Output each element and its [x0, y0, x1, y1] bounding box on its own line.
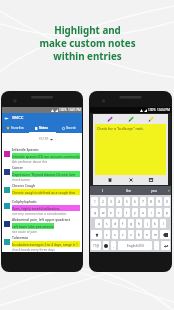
button[interactable]: r [116, 208, 122, 217]
staticText: 9 [158, 200, 160, 204]
button[interactable]: 0 [164, 197, 170, 206]
button[interactable]: Green highlighter [128, 116, 134, 122]
staticText: m [154, 233, 157, 237]
button[interactable]: b [136, 230, 142, 239]
button[interactable]: f [120, 219, 126, 228]
button[interactable]: 2 [100, 197, 106, 206]
button[interactable]: w [100, 208, 106, 217]
button[interactable]: z [104, 230, 110, 239]
staticText: h [138, 222, 140, 226]
button[interactable]: g [128, 219, 134, 228]
staticText: the [126, 188, 132, 193]
button[interactable]: Favorites [2, 123, 28, 133]
button[interactable]: n [144, 230, 150, 239]
button[interactable]: 5 [124, 197, 130, 206]
staticText: d [114, 222, 116, 226]
button[interactable]: 4 [116, 197, 122, 206]
button[interactable]: a [95, 219, 102, 228]
staticText: 5 [126, 200, 128, 204]
button[interactable]: Cancer [2, 164, 82, 182]
staticText: g [130, 222, 132, 226]
button[interactable]: o [156, 208, 162, 217]
button[interactable]: Emoji [103, 241, 109, 250]
button[interactable]: i [148, 208, 154, 217]
button[interactable]: k [152, 219, 158, 228]
button[interactable]: Notes [28, 123, 55, 133]
button[interactable]: l [160, 219, 166, 228]
staticText: l [163, 222, 164, 226]
staticText: > [168, 189, 170, 193]
button[interactable]: you [141, 186, 166, 195]
button[interactable]: 7 [140, 197, 146, 206]
staticText: you [151, 188, 157, 193]
staticText: English(US) [127, 244, 144, 248]
button[interactable]: Chronic Cough [2, 182, 82, 198]
staticText: s [106, 222, 108, 226]
button[interactable]: 9 [156, 197, 162, 206]
button[interactable]: Yellow highlighter [148, 116, 154, 122]
staticText: i [151, 211, 152, 215]
button[interactable]: v [128, 230, 134, 239]
button[interactable]: 1 [91, 197, 98, 206]
button[interactable]: u [140, 208, 146, 217]
staticText: Ask professor about this [12, 160, 48, 164]
button[interactable]: . [154, 241, 159, 250]
button[interactable]: 8 [148, 197, 154, 206]
button[interactable]: h [136, 219, 142, 228]
button[interactable]: 6 [132, 197, 138, 206]
staticText: Runs, highly toxin(d.stilbestine-vasculo… [12, 206, 80, 210]
button[interactable]: Recent [55, 123, 82, 133]
button[interactable]: Abdominal pain, left upper quadrant [2, 216, 82, 234]
staticText: 13:01 PM [68, 108, 81, 112]
button[interactable]: Save [148, 177, 154, 183]
staticText: Incubation averages 3 to 4 days, range i… [12, 242, 80, 246]
staticText: 6 [134, 200, 136, 204]
staticText: q [94, 211, 96, 215]
button[interactable]: t [124, 208, 130, 217]
staticText: 2 [102, 200, 104, 204]
staticText: e [110, 211, 112, 215]
button[interactable]: e [108, 208, 114, 217]
button[interactable]: ?1@ [91, 241, 101, 250]
staticText: not very common but a consideration [12, 212, 67, 216]
staticText: Cancer [12, 166, 23, 170]
button[interactable]: m [152, 230, 158, 239]
staticText: check bands every three days [12, 248, 55, 252]
button[interactable]: Close [128, 177, 134, 183]
staticText: 7 [142, 200, 144, 204]
button[interactable]: the [116, 186, 141, 195]
button[interactable]: Coliphylophatis [2, 198, 82, 216]
button[interactable]: Infantile Spasms [2, 146, 82, 164]
staticText: x [114, 233, 116, 237]
button[interactable]: Delete [107, 177, 113, 183]
button[interactable]: c [120, 230, 126, 239]
button[interactable]: 3 [108, 197, 114, 206]
button[interactable]: Backspace [160, 230, 170, 239]
button[interactable]: y [132, 208, 138, 217]
button[interactable]: I [90, 186, 116, 195]
staticText: z [106, 233, 108, 237]
staticText: v [130, 233, 132, 237]
button[interactable]: s [104, 219, 110, 228]
button[interactable]: q [91, 208, 98, 217]
button[interactable]: Enter [161, 241, 170, 250]
button[interactable]: j [144, 219, 150, 228]
button[interactable]: FILTER [39, 137, 53, 141]
button[interactable]: English(US) [118, 241, 152, 250]
staticText: Check for a "bulls eye" rash. [97, 126, 144, 131]
button[interactable]: x [112, 230, 118, 239]
button[interactable]: Purple highlighter [107, 116, 113, 122]
button[interactable]: Back [2, 113, 82, 123]
staticText: w [102, 211, 105, 215]
button[interactable]: d [112, 219, 118, 228]
staticText: f [122, 222, 124, 226]
button[interactable]: Shift [91, 230, 102, 239]
staticText: Notes [39, 126, 48, 130]
staticText: 3 [110, 200, 112, 204]
staticText: I [102, 188, 104, 193]
button[interactable]: , [111, 241, 116, 250]
button[interactable]: p [164, 208, 170, 217]
button[interactable]: Tularemia [2, 234, 82, 252]
staticText: r [118, 211, 120, 215]
staticText: Highlight and [54, 24, 121, 37]
